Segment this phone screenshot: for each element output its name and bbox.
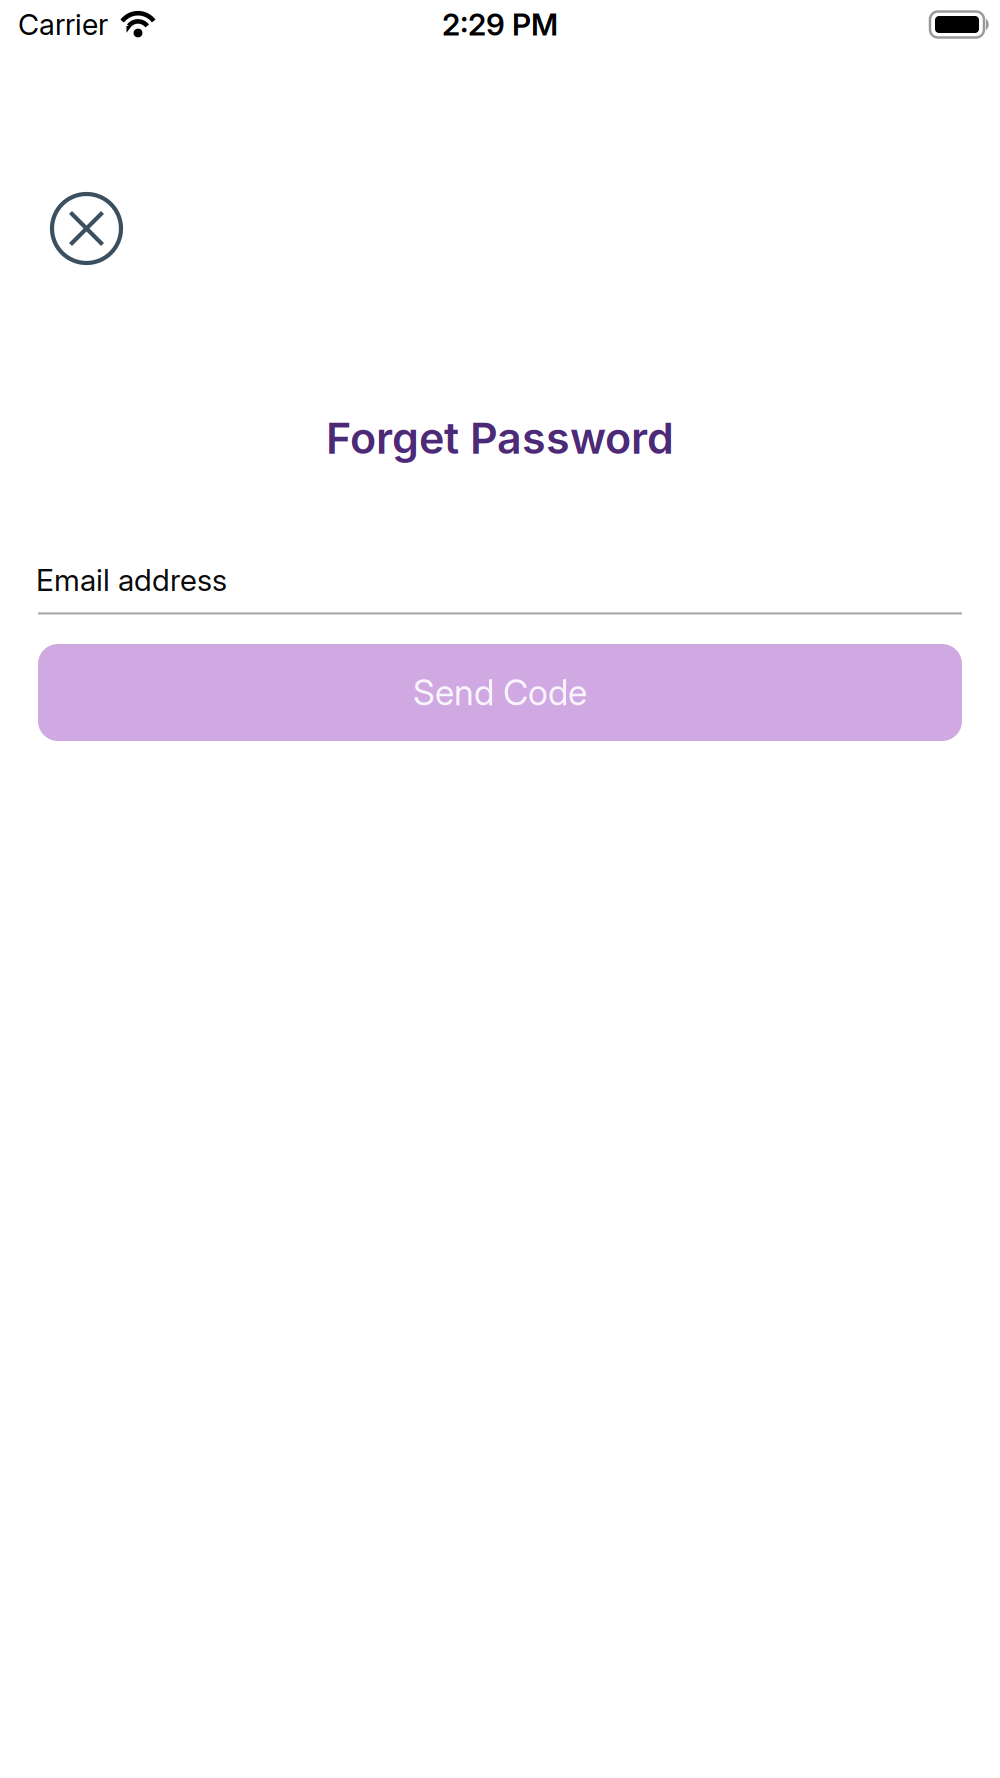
- staticText: Carrier: [18, 7, 108, 42]
- staticText: Email address: [36, 562, 227, 598]
- staticText: Send Code: [413, 671, 587, 714]
- staticText: Forget Password: [326, 412, 674, 464]
- button[interactable]: Close: [52, 194, 121, 263]
- staticText: 2:29 PM: [442, 6, 558, 43]
- button[interactable]: Send Code: [38, 644, 962, 741]
